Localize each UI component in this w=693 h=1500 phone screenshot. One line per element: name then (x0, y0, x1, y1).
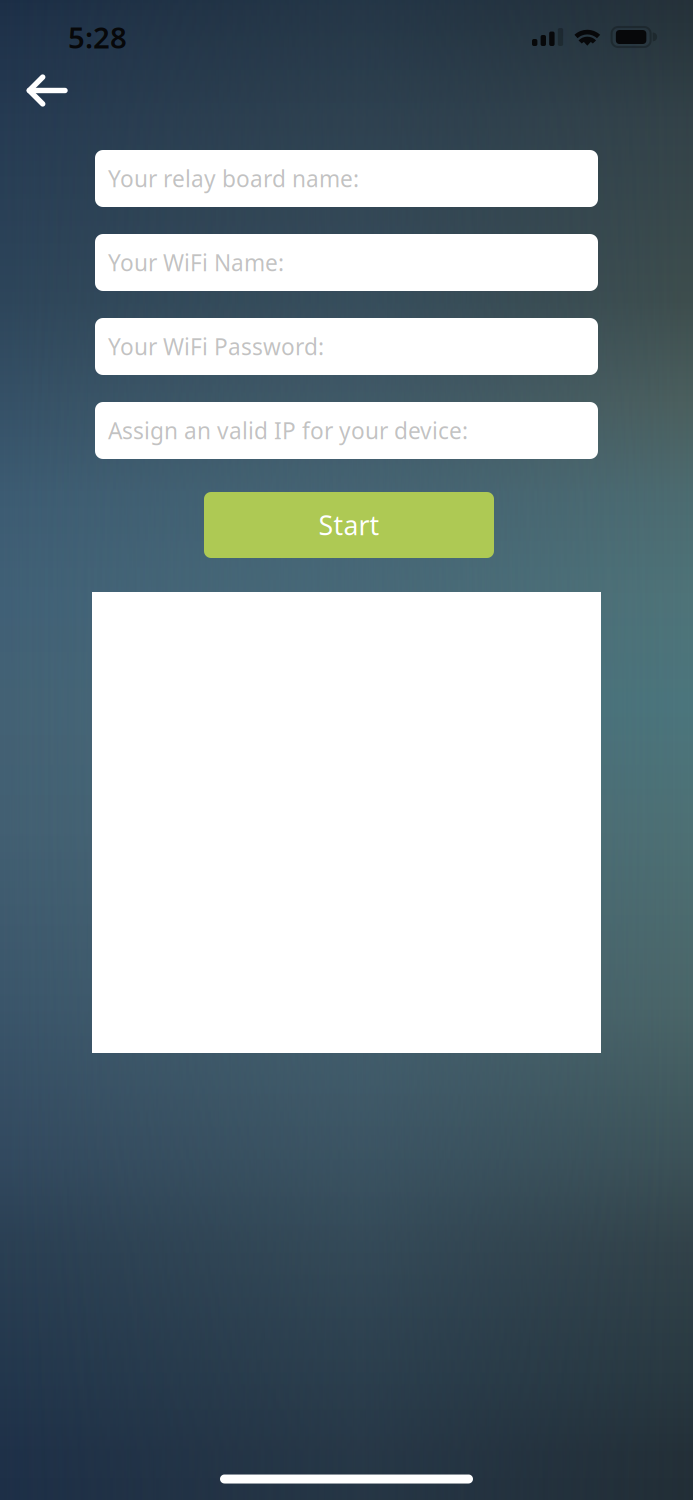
staticText: 5:28 (68, 17, 127, 56)
staticText: Your WiFi Password: (108, 331, 324, 361)
button[interactable]: Your WiFi Password: (95, 318, 598, 375)
staticText: Start (318, 507, 379, 543)
button[interactable]: Your WiFi Name: (95, 234, 598, 291)
staticText: Your relay board name: (108, 163, 359, 193)
button[interactable]: Your relay board name: (95, 150, 598, 207)
button[interactable]: Back (14, 61, 81, 120)
staticText: Your WiFi Name: (108, 247, 284, 277)
button[interactable]: Assign an valid IP for your device: (95, 402, 598, 459)
staticText: Assign an valid IP for your device: (108, 415, 468, 445)
button[interactable]: Start (204, 492, 494, 558)
